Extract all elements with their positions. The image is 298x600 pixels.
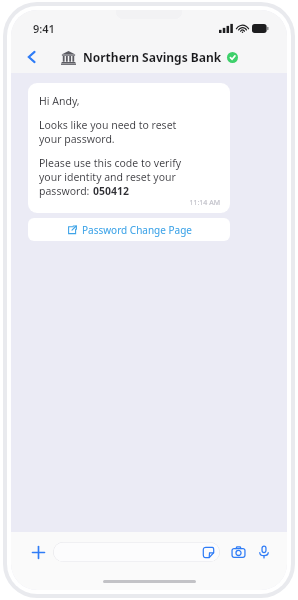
button[interactable]: Password Change Page: [28, 218, 230, 241]
staticText: Please use this code to verify your iden…: [39, 156, 182, 184]
button[interactable]: Camera: [227, 541, 249, 563]
staticText: 11:14 AM: [39, 198, 220, 208]
staticText: Looks like you need to reset your passwo…: [39, 118, 177, 146]
staticText: Password Change Page: [82, 223, 192, 237]
button[interactable]: Message input: [53, 542, 220, 562]
staticText: password:: [39, 184, 93, 198]
staticText: 050412: [93, 184, 130, 198]
button[interactable]: Hi Andy,: [28, 83, 230, 213]
staticText: Northern Savings Bank: [83, 49, 222, 65]
button[interactable]: Add attachment: [25, 539, 51, 565]
button[interactable]: Microphone: [253, 541, 275, 563]
button[interactable]: Back: [19, 44, 45, 70]
staticText: Hi Andy,: [39, 94, 80, 108]
button[interactable]: Stickers: [202, 546, 215, 559]
staticText: 9:41: [33, 21, 55, 36]
